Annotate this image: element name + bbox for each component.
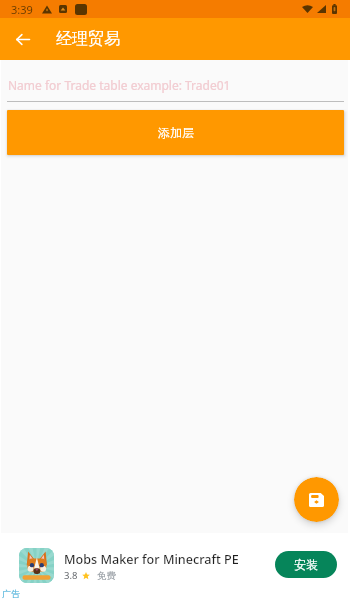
button[interactable]: 添加层 [7, 110, 344, 155]
staticText: 安装 [294, 557, 318, 572]
button[interactable]: 安装 [275, 551, 337, 578]
button[interactable]: Name for Trade table example: Trade01 [7, 62, 344, 102]
staticText: 添加层 [158, 125, 194, 140]
staticText: 广告 [2, 588, 20, 599]
button[interactable]: Back [0, 18, 45, 60]
staticText: 3.8 [64, 569, 78, 582]
staticText: 经理贸易 [56, 29, 120, 49]
staticText: 免费 [97, 570, 116, 582]
staticText: 3:39 [11, 2, 33, 17]
staticText: Name for Trade table example: Trade01 [8, 77, 231, 93]
staticText: Mobs Maker for Minecraft PE [64, 551, 239, 568]
button[interactable]: Save [294, 477, 339, 522]
